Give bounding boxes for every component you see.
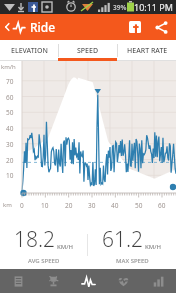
staticText: 60 [158, 201, 166, 210]
staticText: 70 [6, 77, 14, 86]
button[interactable]: ELEVATION [0, 40, 58, 61]
staticText: SPEED [77, 46, 99, 56]
staticText: 10 [6, 171, 14, 180]
staticText: 10:11 PM [134, 1, 173, 13]
staticText: km/h [1, 63, 16, 71]
staticText: 50 [135, 201, 143, 210]
button[interactable]: SPEED [59, 40, 117, 61]
button[interactable]: 61.2 [88, 221, 176, 269]
button[interactable]: HEART RATE [118, 40, 176, 61]
button[interactable]: Health [106, 269, 141, 293]
staticText: 60 [6, 93, 14, 102]
staticText: MAX SPEED [116, 257, 149, 265]
staticText: 61.2 [102, 225, 144, 254]
staticText: 39% [113, 3, 127, 12]
staticText: 20 [6, 156, 14, 165]
staticText: HEART RATE [127, 46, 168, 56]
button[interactable]: Ride [0, 16, 62, 38]
button[interactable]: Stats [141, 269, 176, 293]
staticText: ELEVATION [11, 46, 48, 56]
staticText: 30 [88, 201, 96, 210]
button[interactable]: Challenges [36, 269, 71, 293]
staticText: KM/H [145, 243, 162, 251]
staticText: KM/H [57, 243, 74, 251]
button[interactable]: 18.2 [0, 221, 87, 269]
staticText: 0 [20, 201, 24, 210]
button[interactable]: Activity [71, 269, 106, 293]
staticText: 18.2 [14, 225, 56, 254]
staticText: km [3, 201, 12, 209]
staticText: 20 [65, 201, 73, 210]
staticText: 30 [6, 140, 14, 149]
button[interactable]: Share to Facebook [121, 17, 149, 37]
staticText: 10 [41, 201, 49, 210]
staticText: AVG SPEED [28, 257, 60, 265]
staticText: 40 [6, 124, 14, 133]
staticText: 40 [111, 201, 119, 210]
staticText: Ride [30, 19, 56, 35]
staticText: 50 [6, 108, 14, 117]
button[interactable]: Share [149, 17, 176, 38]
button[interactable]: Feed [0, 269, 36, 293]
